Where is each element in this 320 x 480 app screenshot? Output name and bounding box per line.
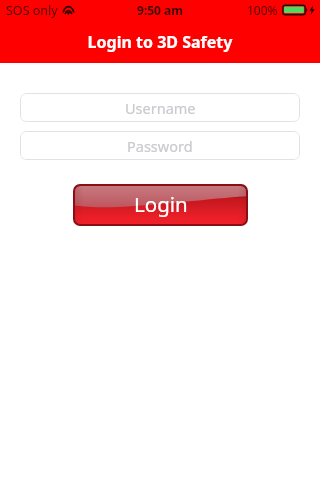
staticText: Username <box>125 98 196 118</box>
staticText: Login to 3D Safety <box>0 31 320 53</box>
staticText: 100% <box>247 2 278 18</box>
other: Charging <box>309 5 315 15</box>
staticText: Password <box>127 136 193 156</box>
button[interactable]: Login <box>73 184 248 226</box>
staticText: 9:50 am <box>0 2 320 18</box>
staticText: Login <box>134 190 188 218</box>
button[interactable]: Username <box>20 93 300 122</box>
staticText: SOS only <box>6 2 58 19</box>
other: Battery 100 percent charging <box>282 5 307 15</box>
button[interactable]: Password <box>20 131 300 160</box>
other: Wi-Fi signal <box>63 7 74 15</box>
